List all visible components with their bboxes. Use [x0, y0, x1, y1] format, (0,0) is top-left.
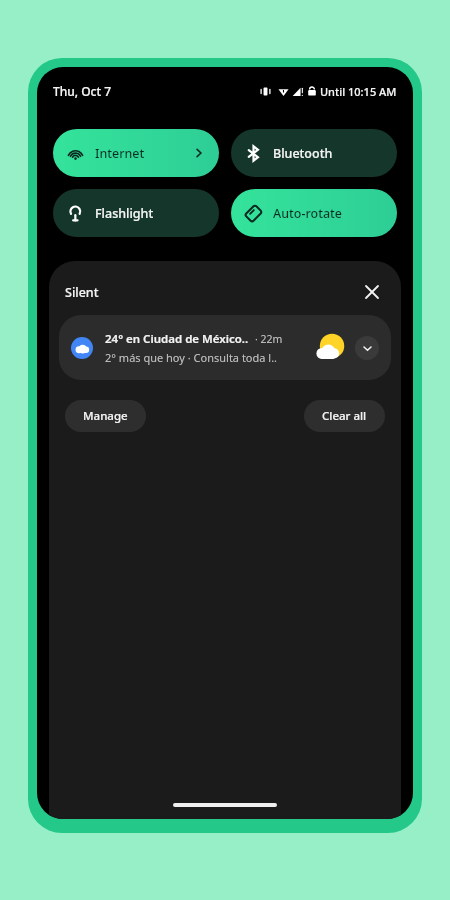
staticText: Thu, Oct 7: [53, 83, 112, 99]
button[interactable]: Internet: [53, 129, 219, 177]
staticText: Until 10:15 AM: [320, 84, 397, 99]
staticText: 2° más que hoy · Consulta toda l..: [105, 350, 278, 365]
staticText: Silent: [65, 284, 99, 301]
button[interactable]: Manage: [65, 400, 146, 432]
button[interactable]: 24° en Ciudad de México..: [59, 315, 391, 380]
button[interactable]: Expand notification: [355, 336, 379, 360]
staticText: Flashlight: [95, 205, 154, 222]
staticText: · 22m: [255, 332, 283, 346]
staticText: 24° en Ciudad de México..: [105, 331, 249, 347]
button[interactable]: Flashlight: [53, 189, 219, 237]
button[interactable]: Auto-rotate: [231, 189, 397, 237]
button[interactable]: Dismiss silent notifications: [359, 279, 385, 305]
staticText: Clear all: [322, 408, 367, 424]
staticText: Auto-rotate: [273, 205, 343, 222]
staticText: Internet: [95, 145, 145, 162]
button[interactable]: Bluetooth: [231, 129, 397, 177]
button[interactable]: Clear all: [304, 400, 385, 432]
staticText: Manage: [83, 408, 128, 424]
staticText: Bluetooth: [273, 145, 333, 162]
